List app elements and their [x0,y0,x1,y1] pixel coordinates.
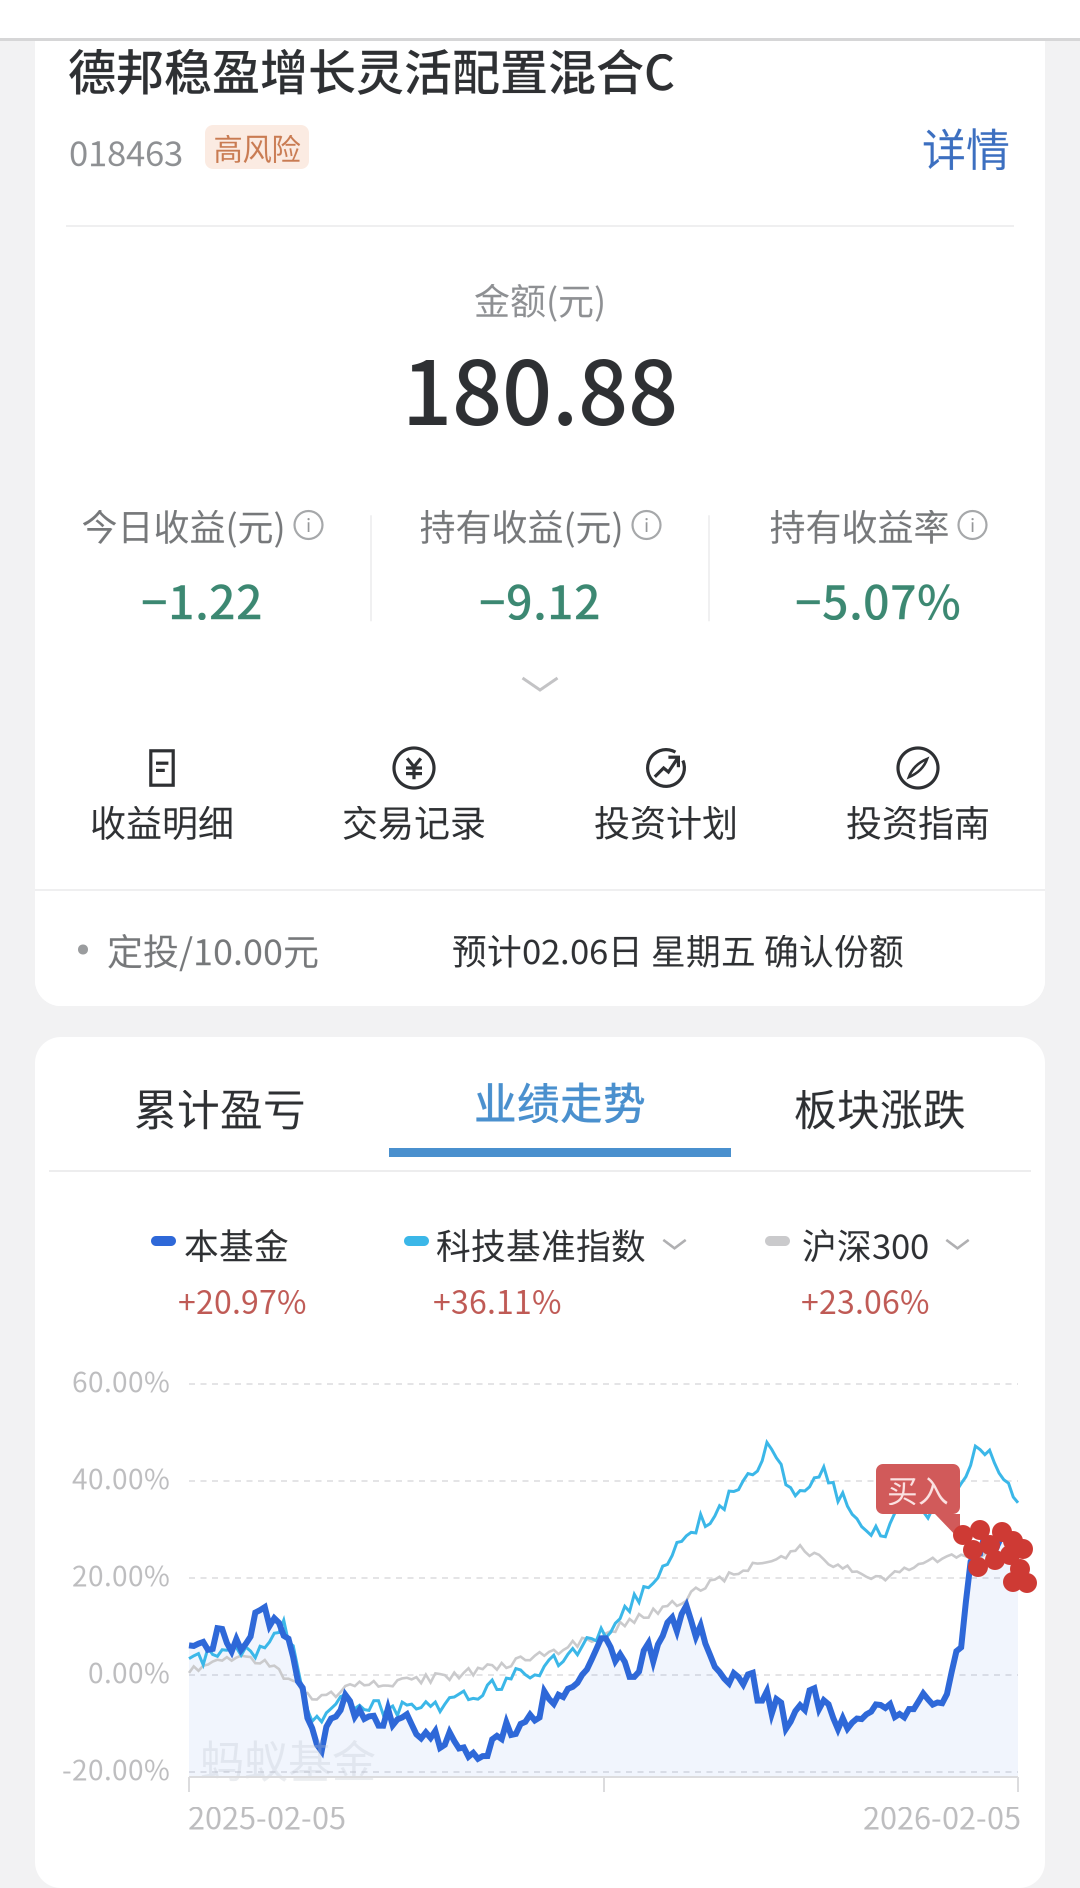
staticText: 预计02.06日 星期五 确认份额 [452,924,904,975]
button[interactable]: 本基金 [35,1037,1045,1888]
staticText: 40.00% [72,1457,170,1497]
staticText: i [306,510,311,537]
staticText: 今日收益(元) [81,499,285,551]
staticText: 投资指南 [846,795,990,847]
staticText: 持有收益(元) [419,499,623,551]
staticText: 板块涨跌 [794,1076,966,1138]
staticText: i [644,510,649,537]
button[interactable]: 科技基准指数 [35,1037,1045,1888]
staticText: 蚂蚁基金 [200,1727,376,1791]
staticText: 20.00% [72,1554,170,1594]
button[interactable]: 详情 [890,118,1010,176]
staticText: 2025-02-05 [188,1794,346,1838]
button[interactable]: 交易记录 [288,703,540,853]
staticText: −5.07% [795,565,961,633]
staticText: +23.06% [801,1277,929,1323]
staticText: 定投/10.00元 [107,923,319,975]
button[interactable]: 定投/10.00元 [35,891,1045,1008]
staticText: i [970,510,975,537]
staticText: 金额(元) [474,273,606,325]
staticText: 科技基准指数 [436,1219,646,1269]
staticText: −1.22 [141,565,263,633]
staticText: 持有收益率 [769,499,949,551]
staticText: 60.00% [72,1360,170,1400]
button[interactable]: 沪深300 [35,1037,1045,1888]
staticText: 收益明细 [90,795,234,847]
button[interactable]: 投资计划 [540,703,792,853]
staticText: 详情 [922,115,1010,179]
staticText: 018463 [69,126,183,176]
button[interactable]: 投资指南 [792,703,1044,853]
button[interactable]: 收益明细 [36,703,288,853]
staticText: 业绩走势 [474,1070,646,1132]
staticText: 本基金 [184,1219,289,1269]
staticText: 买入 [887,1467,949,1511]
staticText: 累计盈亏 [134,1076,306,1138]
staticText: 投资计划 [594,795,738,847]
staticText: +20.97% [178,1277,306,1323]
staticText: 交易记录 [342,795,486,847]
staticText: 沪深300 [802,1219,929,1269]
staticText: -20.00% [62,1748,170,1788]
staticText: −9.12 [479,565,601,633]
staticText: 2026-02-05 [863,1794,1021,1838]
staticText: 高风险 [213,126,300,168]
staticText: 0.00% [88,1651,170,1691]
staticText: 德邦稳盈增长灵活配置混合C [68,34,675,103]
staticText: +36.11% [433,1277,561,1323]
button[interactable]: 业绩走势 [410,1043,710,1171]
button[interactable]: 累计盈亏 [70,1043,370,1171]
staticText: 180.88 [402,323,678,450]
button[interactable]: 板块涨跌 [730,1043,1030,1171]
